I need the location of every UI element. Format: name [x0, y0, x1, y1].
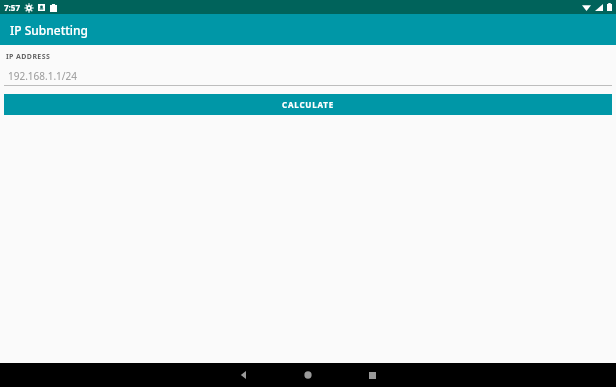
staticText: 192.168.1.1/24: [8, 69, 77, 83]
button[interactable]: 192.168.1.1/24: [4, 67, 612, 86]
button[interactable]: CALCULATE: [4, 94, 612, 115]
button[interactable]: Home: [300, 367, 316, 383]
staticText: IP ADDRESS: [6, 52, 51, 62]
staticText: CALCULATE: [282, 99, 334, 110]
button[interactable]: Back: [236, 367, 252, 383]
staticText: IP Subnetting: [10, 22, 89, 38]
button[interactable]: Recent apps: [364, 367, 380, 383]
staticText: 7:57: [4, 2, 20, 13]
